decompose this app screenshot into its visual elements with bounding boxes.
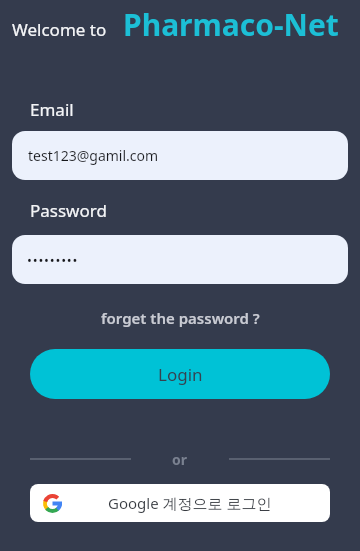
staticText: Login xyxy=(158,363,203,386)
staticText: or xyxy=(172,450,188,469)
button[interactable]: forget the password ? xyxy=(101,308,260,328)
staticText: test123@gamil.com xyxy=(28,146,159,165)
button[interactable]: Login xyxy=(30,349,330,399)
staticText: Password xyxy=(30,199,107,222)
staticText: Email xyxy=(30,98,74,121)
staticText: Pharmaco-Net xyxy=(123,4,339,45)
staticText: Google 계정으로 로그인 xyxy=(108,493,272,513)
button[interactable]: Google 계정으로 로그인 xyxy=(30,484,330,522)
staticText: ••••••••• xyxy=(27,251,79,269)
staticText: Welcome to xyxy=(12,18,107,41)
button[interactable]: test123@gamil.com xyxy=(12,131,348,180)
button[interactable]: ••••••••• xyxy=(12,235,348,284)
